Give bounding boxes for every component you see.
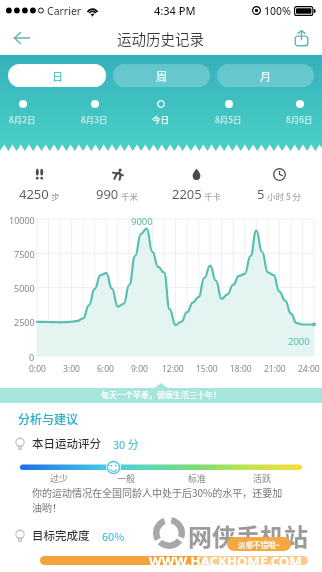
button[interactable]: 目标完成度 xyxy=(14,527,125,544)
staticText: 7500 xyxy=(14,248,35,260)
staticText: Carrier xyxy=(47,4,82,18)
staticText: 本日运动评分 xyxy=(32,435,101,452)
staticText: 今日 xyxy=(152,113,170,125)
staticText: 分析与建议 xyxy=(18,410,79,427)
button[interactable]: 今日 xyxy=(148,100,174,125)
staticText: 12:00 xyxy=(162,363,184,375)
staticText: 过少 xyxy=(50,472,69,485)
button[interactable]: 2205 xyxy=(157,168,236,203)
staticText: 4250 xyxy=(19,185,49,203)
staticText: 每天一个苹果，健康生活三十年！ xyxy=(101,389,221,401)
staticText: 10000 xyxy=(9,214,35,226)
staticText: 15:00 xyxy=(196,363,218,375)
staticText: 标准 xyxy=(188,472,207,485)
staticText: 60% xyxy=(102,528,125,544)
staticText: 8月3日 xyxy=(81,113,108,125)
staticText: 2000 xyxy=(288,335,310,348)
staticText: 活跃 xyxy=(253,472,272,485)
staticText: 网侠手机站 xyxy=(188,518,308,553)
button[interactable]: 周 xyxy=(113,64,210,87)
staticText: 8月2日 xyxy=(9,113,36,125)
staticText: 24:00 xyxy=(298,363,320,375)
button[interactable]: 5 xyxy=(236,168,322,203)
staticText: 4:34 PM xyxy=(154,3,196,18)
staticText: 18:00 xyxy=(230,363,252,375)
button[interactable]: Share xyxy=(280,21,322,55)
staticText: 千米 xyxy=(121,190,139,202)
button[interactable]: 本日运动评分 xyxy=(14,435,139,452)
staticText: 5 xyxy=(257,185,265,203)
staticText: WWW.HACKHOME.COM xyxy=(149,552,302,570)
staticText: 8月5日 xyxy=(215,113,242,125)
staticText: 月 xyxy=(260,68,271,84)
staticText: 8月6日 xyxy=(286,113,313,125)
staticText: 千卡 xyxy=(204,190,222,202)
staticText: 周 xyxy=(156,68,167,84)
button[interactable]: 8月2日 xyxy=(5,100,40,125)
staticText: 6:00 xyxy=(97,363,114,375)
staticText: 你的运动情况在全国同龄人中处于后30%的水平，还要加油哟！ xyxy=(32,485,288,515)
button[interactable]: 8月5日 xyxy=(211,100,246,125)
staticText: 21:00 xyxy=(264,363,286,375)
staticText: 淡哪不错哦~ xyxy=(238,539,280,550)
staticText: 990 xyxy=(96,185,119,203)
staticText: 3:00 xyxy=(63,363,80,375)
staticText: 5000 xyxy=(14,282,35,294)
staticText: 日 xyxy=(52,68,63,84)
button[interactable]: 4250 xyxy=(0,168,78,203)
staticText: 30 分 xyxy=(113,436,139,452)
button[interactable]: 8月6日 xyxy=(282,100,317,125)
staticText: 一般 xyxy=(117,472,136,485)
staticText: 目标完成度 xyxy=(32,527,90,544)
staticText: 9:00 xyxy=(131,363,148,375)
button[interactable]: 990 xyxy=(78,168,157,203)
button[interactable]: 8月3日 xyxy=(77,100,112,125)
staticText: 9000 xyxy=(131,215,153,228)
staticText: 2500 xyxy=(14,316,35,328)
staticText: 小时 5 分 xyxy=(267,190,302,202)
staticText: 运动历史记录 xyxy=(117,28,204,49)
button[interactable]: 月 xyxy=(217,64,314,87)
staticText: 0:00 xyxy=(29,363,46,375)
staticText: 0 xyxy=(29,351,35,363)
staticText: 2205 xyxy=(172,185,202,203)
staticText: 100% xyxy=(264,4,291,18)
staticText: 步 xyxy=(51,190,60,202)
button[interactable]: 日 xyxy=(8,64,106,87)
button[interactable]: Back xyxy=(0,21,42,55)
